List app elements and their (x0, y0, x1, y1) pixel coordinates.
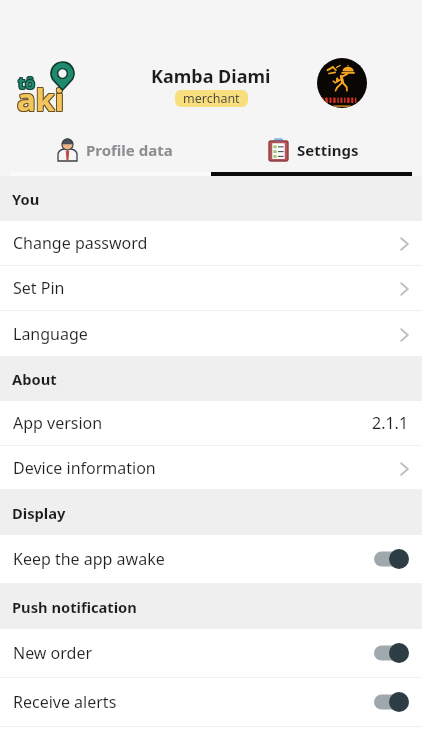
button[interactable]: Settings (211, 128, 422, 176)
staticText: Language (13, 323, 88, 345)
staticText: tô (17, 71, 34, 93)
button[interactable]: Set Pin (0, 266, 422, 311)
staticText: Set Pin (13, 277, 65, 299)
staticText: Device information (13, 457, 156, 479)
button[interactable]: Keep the app awake (0, 535, 422, 584)
staticText: aki (16, 79, 64, 121)
staticText: tô (19, 73, 36, 95)
button[interactable]: Change password (0, 221, 422, 266)
staticText: aki (18, 79, 66, 121)
staticText: Change password (13, 232, 148, 254)
staticText: Keep the app awake (13, 548, 165, 570)
staticText: App version (13, 412, 103, 434)
staticText: aki (17, 77, 65, 119)
button[interactable]: Language (0, 311, 422, 357)
staticText: Push notification (12, 597, 137, 617)
staticText: tô (19, 71, 36, 93)
staticText: merchant (183, 90, 240, 107)
staticText: aki (16, 78, 64, 120)
staticText: aki (17, 78, 65, 120)
button[interactable]: Profile data (0, 128, 211, 176)
staticText: Kamba Diami (151, 64, 271, 89)
staticText: Profile data (86, 140, 173, 160)
staticText: Settings (297, 140, 359, 160)
staticText: tô (18, 72, 35, 94)
staticText: tô (18, 73, 35, 95)
staticText: aki (18, 77, 66, 119)
button[interactable]: Toggle Receive alerts (374, 692, 409, 712)
staticText: Display (12, 503, 66, 523)
staticText: aki (18, 78, 66, 120)
staticText: About (12, 369, 57, 389)
staticText: Receive alerts (13, 691, 117, 713)
button[interactable]: New order (0, 629, 422, 678)
staticText: New order (13, 642, 93, 664)
button[interactable]: Toggle New order (374, 643, 409, 663)
button[interactable]: Receive alerts (0, 678, 422, 727)
button[interactable]: App version (0, 401, 422, 446)
staticText: tô (18, 71, 35, 93)
staticText: tô (19, 72, 36, 94)
button[interactable]: Device information (0, 446, 422, 490)
staticText: aki (17, 79, 65, 121)
staticText: tô (17, 73, 34, 95)
button[interactable]: Merchant logo (317, 58, 367, 108)
staticText: aki (16, 77, 64, 119)
staticText: You (12, 189, 40, 209)
staticText: tô (17, 72, 34, 94)
button[interactable]: Toggle Keep the app awake (374, 549, 409, 569)
staticText: 2.1.1 (372, 412, 409, 434)
